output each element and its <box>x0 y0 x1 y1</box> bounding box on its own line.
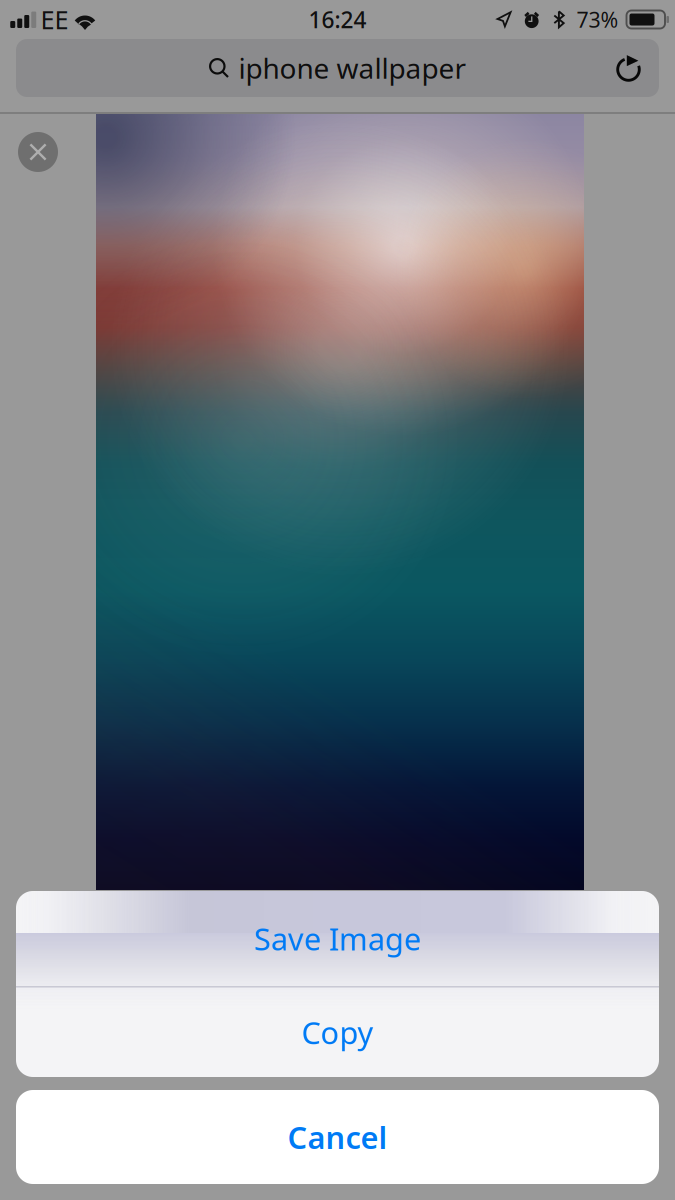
staticText: Cancel <box>287 1117 387 1157</box>
button[interactable]: iphone wallpaper <box>16 39 659 97</box>
button[interactable]: Cancel <box>16 1090 659 1184</box>
button[interactable]: Save Image <box>16 891 659 986</box>
button[interactable]: Reload <box>608 53 651 82</box>
staticText: EE <box>40 3 68 36</box>
button[interactable]: Close <box>12 126 64 178</box>
staticText: iphone wallpaper <box>238 49 466 87</box>
staticText: Copy <box>301 1012 373 1053</box>
staticText: Save Image <box>254 918 421 959</box>
staticText: 16:24 <box>308 4 366 34</box>
staticText: 73% <box>576 5 618 34</box>
button[interactable]: Copy <box>16 987 659 1077</box>
